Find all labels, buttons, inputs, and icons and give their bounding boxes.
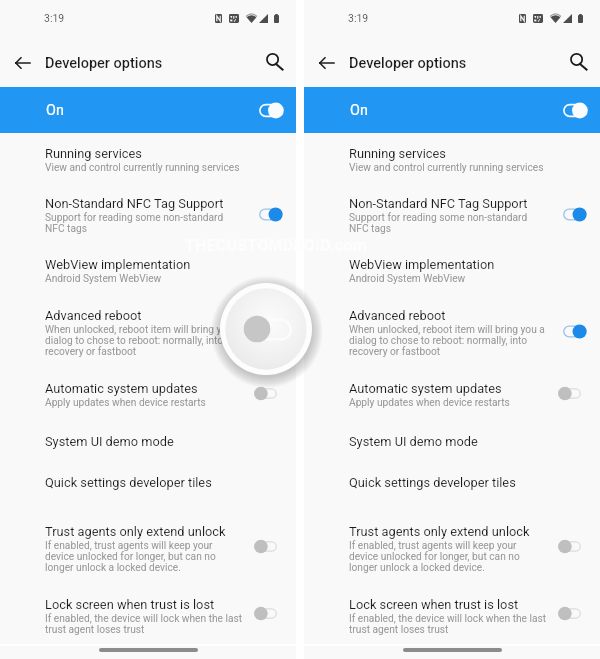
- staticText: Apply updates when device restarts: [45, 397, 206, 409]
- staticText: Lock screen when trust is lost: [349, 597, 519, 612]
- other: Home: [99, 648, 198, 652]
- button[interactable]: Trust agents only extend unlock: [0, 524, 296, 579]
- button[interactable]: On: [304, 87, 600, 133]
- button[interactable]: Back: [8, 49, 36, 77]
- button[interactable]: Non-Standard NFC Tag Support: [304, 196, 600, 239]
- button[interactable]: WebView implementation: [0, 257, 296, 289]
- staticText: If enabled, trust agents will keep your …: [349, 540, 520, 574]
- staticText: View and control currently running servi…: [45, 162, 240, 174]
- staticText: Developer options: [349, 55, 467, 72]
- staticText: Advanced reboot: [349, 308, 446, 323]
- staticText: Non-Standard NFC Tag Support: [349, 196, 528, 211]
- other: Home: [403, 648, 502, 652]
- staticText: Automatic system updates: [45, 381, 198, 396]
- button[interactable]: Advanced reboot: [0, 308, 296, 363]
- button[interactable]: Quick settings developer tiles: [304, 475, 600, 495]
- staticText: Trust agents only extend unlock: [45, 524, 226, 539]
- staticText: Android System WebView: [45, 273, 162, 285]
- staticText: WebView implementation: [349, 257, 495, 272]
- staticText: 3:19: [348, 12, 369, 24]
- staticText: If enabled, the device will lock when th…: [349, 613, 547, 636]
- button[interactable]: Running services: [0, 146, 296, 178]
- button[interactable]: Search: [261, 49, 289, 77]
- staticText: System UI demo mode: [349, 434, 478, 449]
- button[interactable]: Running services: [304, 146, 600, 178]
- staticText: Android System WebView: [349, 273, 466, 285]
- staticText: Running services: [45, 146, 142, 161]
- button[interactable]: Non-Standard NFC Tag Support: [0, 196, 296, 239]
- button[interactable]: Advanced reboot: [304, 308, 600, 363]
- button[interactable]: Lock screen when trust is lost: [304, 597, 600, 640]
- staticText: View and control currently running servi…: [349, 162, 544, 174]
- staticText: Developer options: [45, 55, 163, 72]
- button[interactable]: Quick settings developer tiles: [0, 475, 296, 495]
- staticText: Advanced reboot: [45, 308, 142, 323]
- button[interactable]: WebView implementation: [304, 257, 600, 289]
- staticText: When unlocked, reboot item will bring yo…: [45, 324, 241, 358]
- staticText: Non-Standard NFC Tag Support: [45, 196, 224, 211]
- staticText: On: [46, 102, 64, 119]
- button[interactable]: On: [0, 87, 296, 133]
- staticText: Lock screen when trust is lost: [45, 597, 215, 612]
- staticText: If enabled, the device will lock when th…: [45, 613, 243, 636]
- button[interactable]: Lock screen when trust is lost: [0, 597, 296, 640]
- staticText: When unlocked, reboot item will bring yo…: [349, 324, 545, 358]
- button[interactable]: Automatic system updates: [304, 381, 600, 413]
- staticText: Automatic system updates: [349, 381, 502, 396]
- staticText: Quick settings developer tiles: [45, 475, 212, 490]
- button[interactable]: Search: [565, 49, 593, 77]
- button[interactable]: Automatic system updates: [0, 381, 296, 413]
- button[interactable]: System UI demo mode: [304, 434, 600, 454]
- button[interactable]: Back: [312, 49, 340, 77]
- staticText: If enabled, trust agents will keep your …: [45, 540, 216, 574]
- staticText: On: [350, 102, 368, 119]
- staticText: WebView implementation: [45, 257, 191, 272]
- button[interactable]: Trust agents only extend unlock: [304, 524, 600, 579]
- staticText: System UI demo mode: [45, 434, 174, 449]
- staticText: Quick settings developer tiles: [349, 475, 516, 490]
- staticText: Trust agents only extend unlock: [349, 524, 530, 539]
- staticText: Apply updates when device restarts: [349, 397, 510, 409]
- staticText: 3:19: [44, 12, 65, 24]
- staticText: Support for reading some non-standard NF…: [349, 212, 528, 235]
- staticText: Support for reading some non-standard NF…: [45, 212, 224, 235]
- staticText: Running services: [349, 146, 446, 161]
- button[interactable]: System UI demo mode: [0, 434, 296, 454]
